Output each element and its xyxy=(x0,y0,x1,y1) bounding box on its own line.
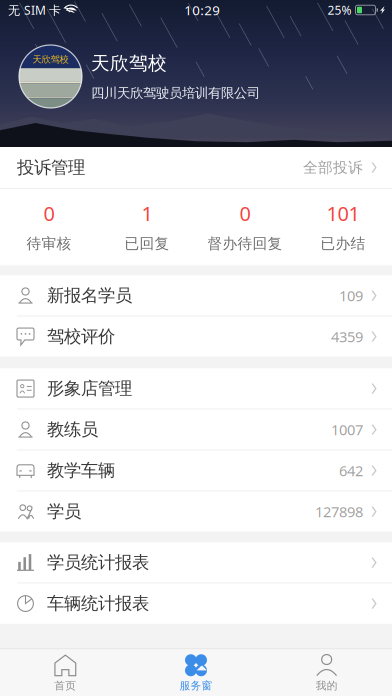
staticText: 127898 xyxy=(315,502,363,521)
staticText: 督办待回复 xyxy=(207,235,282,253)
button[interactable]: 101 xyxy=(294,200,392,253)
staticText: 天欣驾校 xyxy=(91,52,167,75)
staticText: 待审核 xyxy=(26,235,71,253)
staticText: 教学车辆 xyxy=(47,460,115,481)
staticText: 四川天欣驾驶员培训有限公司 xyxy=(91,85,260,101)
staticText: 全部投诉 xyxy=(303,158,363,176)
staticText: 天欣驾校 xyxy=(32,54,68,65)
staticText: 已办结 xyxy=(320,235,365,253)
staticText: 学员 xyxy=(47,501,81,522)
staticText: 0 xyxy=(43,200,54,227)
staticText: 新报名学员 xyxy=(47,285,132,306)
staticText: 学员统计报表 xyxy=(47,552,149,573)
staticText: 车辆统计报表 xyxy=(47,593,149,614)
button[interactable]: 学员 xyxy=(0,492,392,532)
button[interactable]: 形象店管理 xyxy=(0,369,392,409)
staticText: 4359 xyxy=(331,327,363,346)
staticText: 服务窗 xyxy=(179,679,212,692)
button[interactable]: 新报名学员 xyxy=(0,276,392,316)
staticText: 1007 xyxy=(331,420,363,439)
button[interactable]: 首页 xyxy=(0,654,131,692)
button[interactable]: 教学车辆 xyxy=(0,451,392,491)
staticText: 10:29 xyxy=(184,1,220,19)
staticText: 109 xyxy=(339,286,363,305)
button[interactable]: 0 xyxy=(0,200,98,253)
button[interactable]: 服务窗 xyxy=(131,654,261,692)
staticText: 驾校评价 xyxy=(47,326,115,347)
staticText: 25% xyxy=(327,2,351,18)
staticText: 101 xyxy=(326,200,359,227)
staticText: 首页 xyxy=(54,679,76,692)
button[interactable]: 车辆统计报表 xyxy=(0,584,392,624)
button[interactable]: 驾校评价 xyxy=(0,317,392,357)
staticText: 642 xyxy=(339,461,363,480)
staticText: 0 xyxy=(239,200,250,227)
button[interactable]: 0 xyxy=(196,200,294,253)
staticText: 形象店管理 xyxy=(47,378,132,399)
staticText: 我的 xyxy=(316,679,338,692)
staticText: 已回复 xyxy=(124,235,169,253)
staticText: 教练员 xyxy=(47,419,98,440)
button[interactable]: 1 xyxy=(98,200,196,253)
staticText: 1 xyxy=(141,200,152,227)
button[interactable]: 教练员 xyxy=(0,410,392,450)
button[interactable]: 学员统计报表 xyxy=(0,543,392,583)
button[interactable]: 投诉管理 xyxy=(0,147,392,188)
button[interactable]: 我的 xyxy=(261,654,392,692)
staticText: 投诉管理 xyxy=(17,157,85,178)
staticText: 无 SIM 卡 xyxy=(8,2,61,18)
